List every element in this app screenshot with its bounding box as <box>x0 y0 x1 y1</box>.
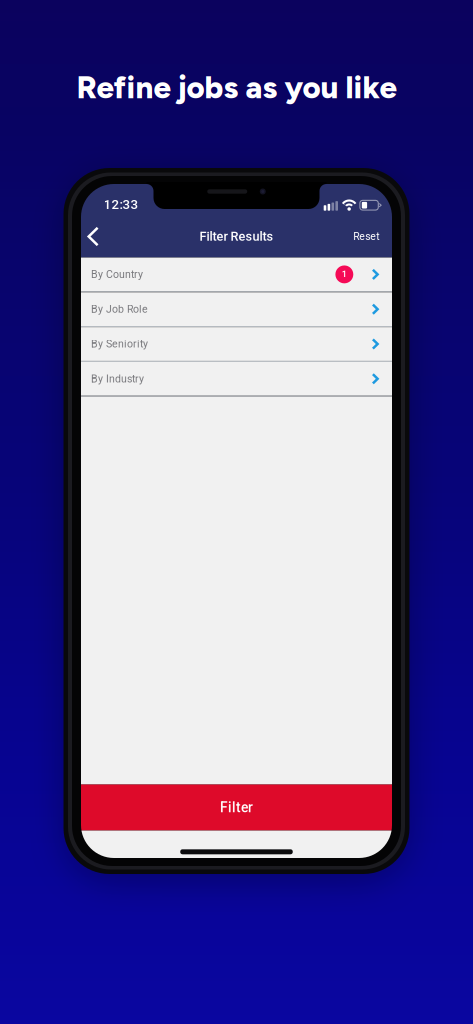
staticText: Refine jobs as you like <box>76 68 396 106</box>
staticText: By Industry <box>91 373 144 385</box>
button[interactable]: By Industry <box>81 362 392 396</box>
button[interactable]: By Country <box>81 257 392 291</box>
button[interactable]: By Job Role <box>81 292 392 326</box>
button[interactable]: Back <box>81 219 113 254</box>
staticText: 1 <box>342 269 347 280</box>
staticText: By Country <box>91 268 143 280</box>
staticText: Filter <box>220 799 253 816</box>
staticText: By Seniority <box>91 338 148 350</box>
button[interactable]: Reset <box>339 219 392 254</box>
staticText: Reset <box>353 230 379 243</box>
staticText: 12:33 <box>104 197 139 212</box>
button[interactable]: By Seniority <box>81 327 392 361</box>
staticText: By Job Role <box>91 303 148 315</box>
staticText: Filter Results <box>199 229 273 244</box>
button[interactable]: Filter <box>81 784 392 830</box>
